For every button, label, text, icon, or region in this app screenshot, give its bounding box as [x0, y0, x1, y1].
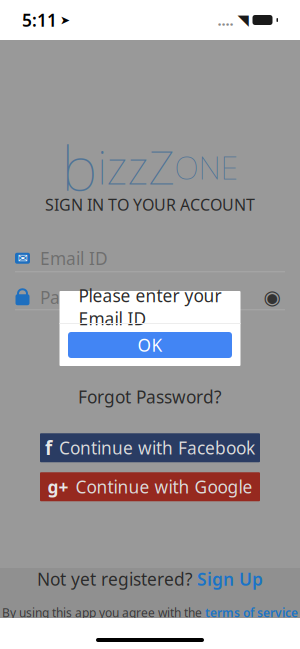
- staticText: Not yet registered?: [37, 567, 193, 590]
- staticText: ✉: [17, 251, 27, 265]
- staticText: ONE: [174, 146, 238, 188]
- staticText: f: [45, 435, 52, 460]
- staticText: terms of service: [205, 604, 298, 620]
- staticText: ➤: [60, 13, 70, 27]
- button[interactable]: OK: [68, 332, 232, 358]
- staticText: Please enter your Email ID: [78, 284, 221, 330]
- button[interactable]: By using this app you agree with the: [2, 602, 298, 622]
- staticText: b: [61, 126, 97, 208]
- button[interactable]: Forgot Password?: [68, 382, 232, 411]
- button[interactable]: g+: [40, 472, 260, 501]
- staticText: izz: [97, 137, 148, 197]
- staticText: g+: [47, 475, 68, 498]
- staticText: Email ID: [40, 247, 108, 270]
- staticText: ◥: [237, 12, 248, 28]
- staticText: SIGN IN TO YOUR ACCOUNT: [45, 194, 255, 215]
- staticText: Z: [148, 137, 174, 197]
- button[interactable]: Show password: [259, 286, 285, 308]
- staticText: ....: [217, 10, 233, 30]
- staticText: Sign Up: [197, 567, 263, 590]
- staticText: 5:11: [22, 8, 57, 31]
- staticText: Continue with Google: [75, 475, 252, 498]
- staticText: By using this app you agree with the: [2, 604, 202, 620]
- staticText: Password: [40, 286, 118, 309]
- staticText: ◉: [263, 286, 280, 309]
- button[interactable]: Not yet registered?: [37, 565, 263, 592]
- staticText: Forgot Password?: [78, 385, 222, 408]
- staticText: OK: [137, 333, 162, 356]
- button[interactable]: f: [40, 433, 260, 462]
- staticText: Continue with Facebook: [59, 436, 255, 459]
